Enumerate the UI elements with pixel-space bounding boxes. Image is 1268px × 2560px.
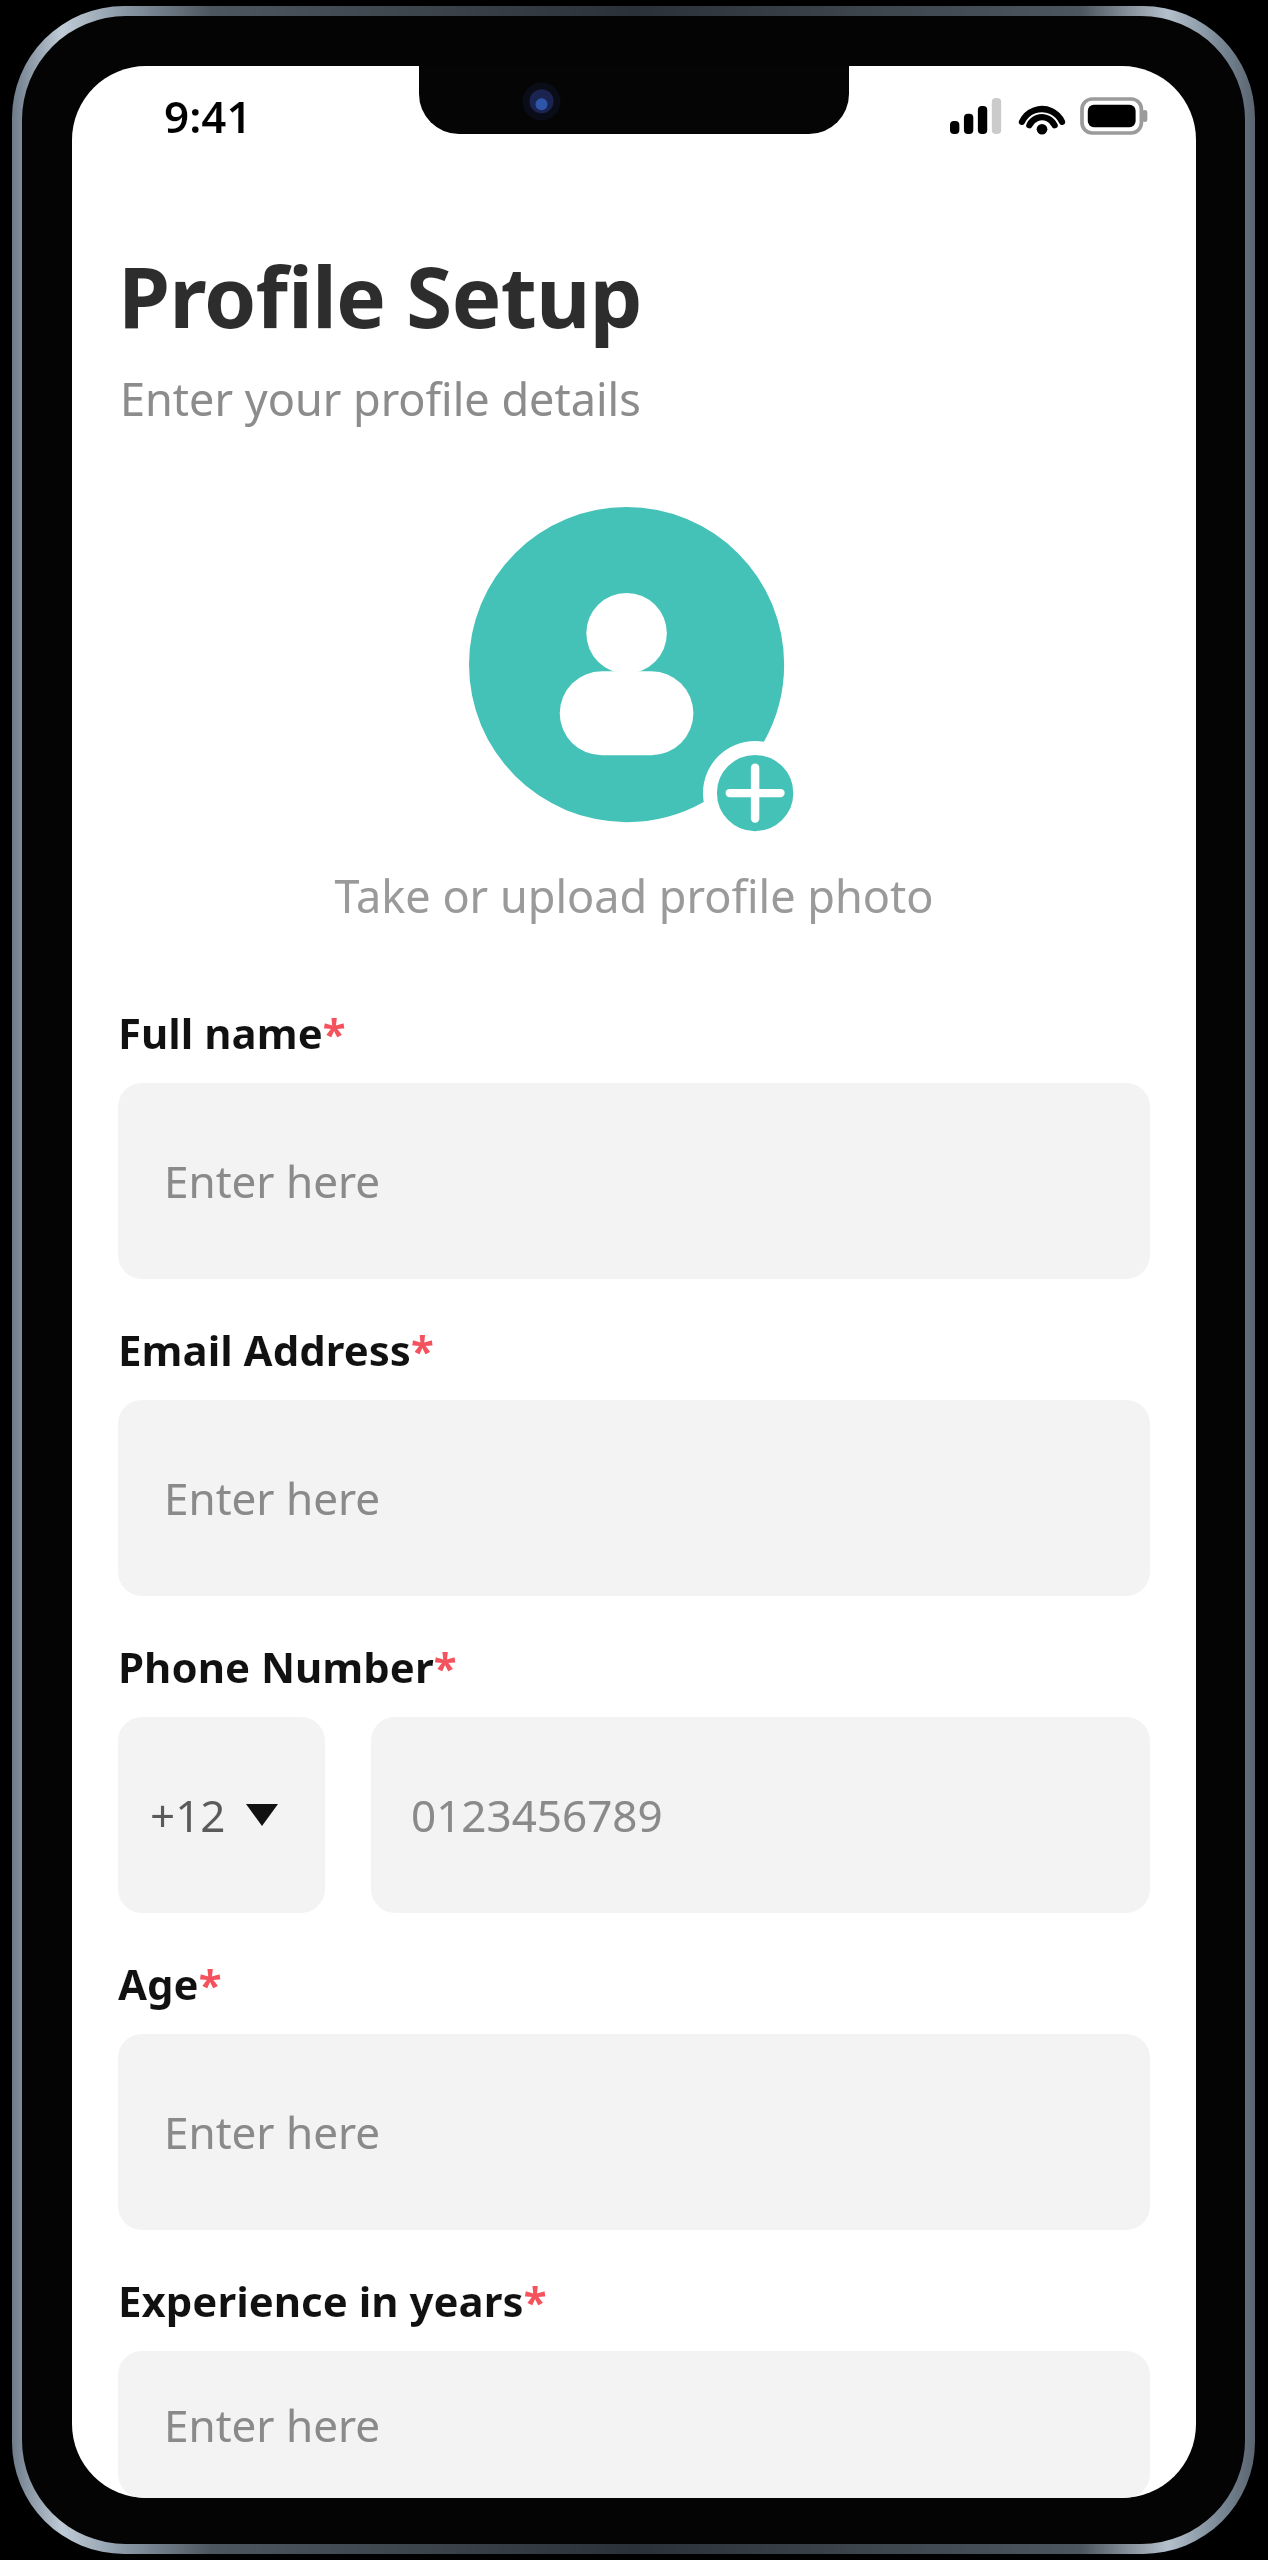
staticText: Enter here [164,1151,381,1211]
staticText: Enter your profile details [120,368,641,429]
staticText: +12 [150,1785,226,1845]
staticText: Experience in years* [118,2272,547,2329]
staticText: Email Address* [118,1321,434,1378]
button[interactable]: 0123456789 [371,1717,1150,1913]
button[interactable]: Take or upload profile photo [469,507,799,837]
staticText: Phone Number* [118,1638,457,1695]
button[interactable]: Select country code [118,1717,325,1913]
staticText: 0123456789 [411,1785,663,1845]
button[interactable]: Enter here [118,2034,1150,2230]
button[interactable]: Enter here [118,1083,1150,1279]
staticText: Enter here [164,2395,381,2455]
staticText: Take or upload profile photo [72,865,1196,926]
staticText: Age* [118,1955,222,2012]
button[interactable]: Enter here [118,1400,1150,1596]
staticText: Full name* [118,1004,346,1061]
staticText: Enter here [164,1468,381,1528]
staticText: Profile Setup [118,238,642,352]
button[interactable]: Enter here [118,2351,1150,2498]
staticText: 9:41 [164,86,252,146]
staticText: Enter here [164,2102,381,2162]
